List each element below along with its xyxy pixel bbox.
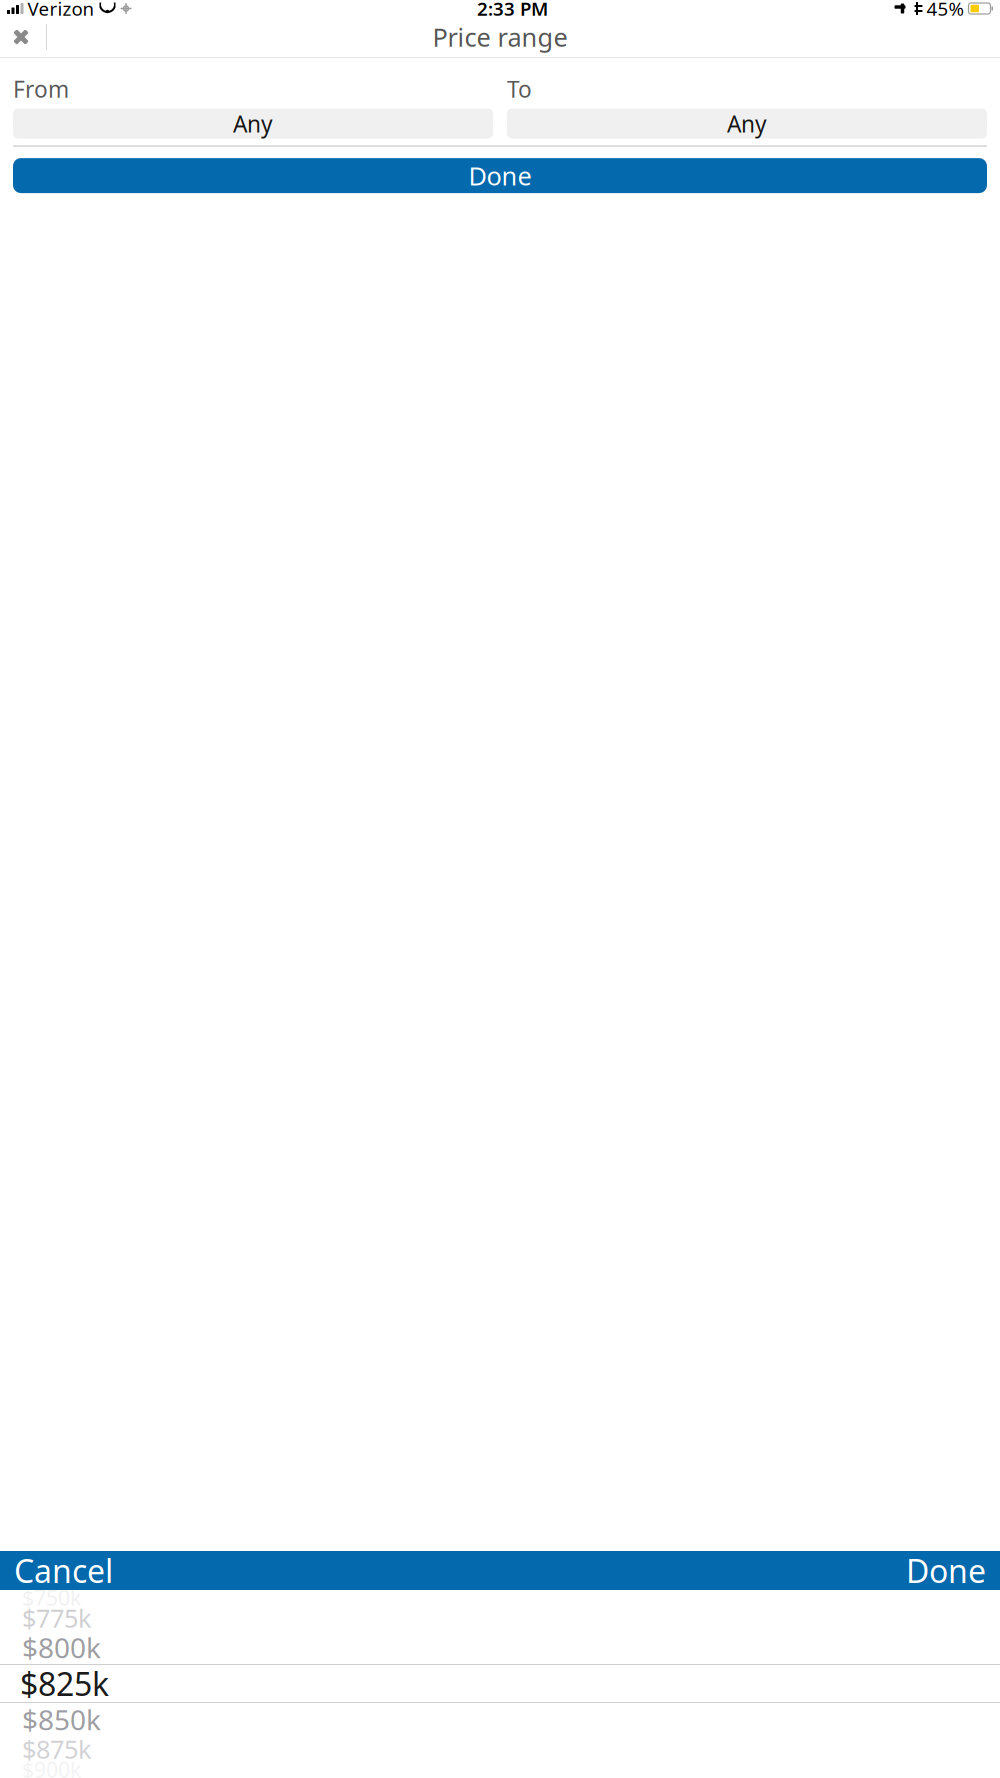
button[interactable]: Any bbox=[507, 110, 987, 137]
staticText: 45% bbox=[926, 0, 964, 21]
staticText: $825k bbox=[20, 1662, 109, 1705]
staticText: Any bbox=[727, 109, 767, 139]
staticText: $900k bbox=[22, 1755, 81, 1778]
staticText: $750k bbox=[22, 1583, 81, 1612]
staticText: Done bbox=[906, 1549, 986, 1592]
staticText: 2:33 PM bbox=[477, 0, 548, 21]
button[interactable]: Done bbox=[13, 158, 987, 193]
button[interactable]: Any bbox=[13, 110, 493, 137]
button[interactable]: Done bbox=[892, 1543, 1000, 1598]
staticText: $850k bbox=[22, 1701, 101, 1738]
staticText: $800k bbox=[22, 1629, 101, 1666]
staticText: $775k bbox=[22, 1601, 92, 1635]
staticText: Verizon bbox=[27, 0, 94, 21]
staticText: $875k bbox=[22, 1732, 92, 1766]
staticText: Any bbox=[233, 109, 273, 139]
staticText: Price range bbox=[432, 20, 567, 54]
button[interactable]: Cancel bbox=[0, 1543, 127, 1598]
staticText: From bbox=[13, 74, 69, 104]
staticText: Cancel bbox=[14, 1549, 113, 1592]
button[interactable]: Close bbox=[1, 17, 41, 57]
staticText: To bbox=[507, 74, 532, 104]
staticText: Done bbox=[468, 159, 531, 192]
